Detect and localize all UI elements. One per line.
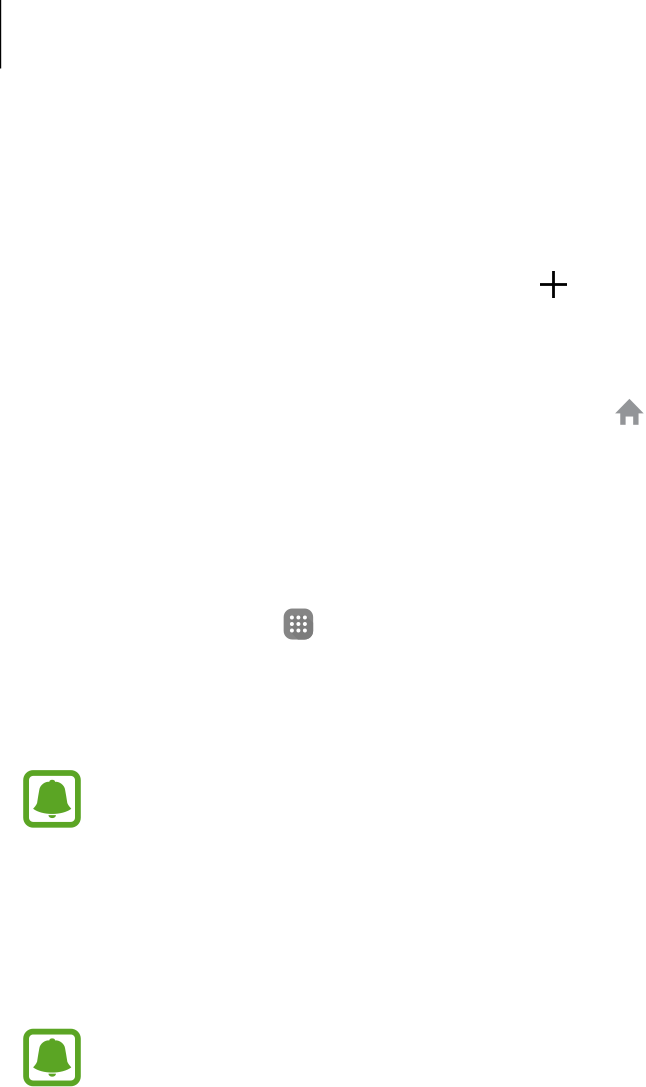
button[interactable]: Apps (284, 608, 313, 639)
button[interactable]: Add (540, 271, 567, 298)
button[interactable]: Notifications (23, 1029, 81, 1086)
button[interactable]: Notifications (23, 770, 81, 828)
button[interactable]: Home (615, 399, 644, 425)
